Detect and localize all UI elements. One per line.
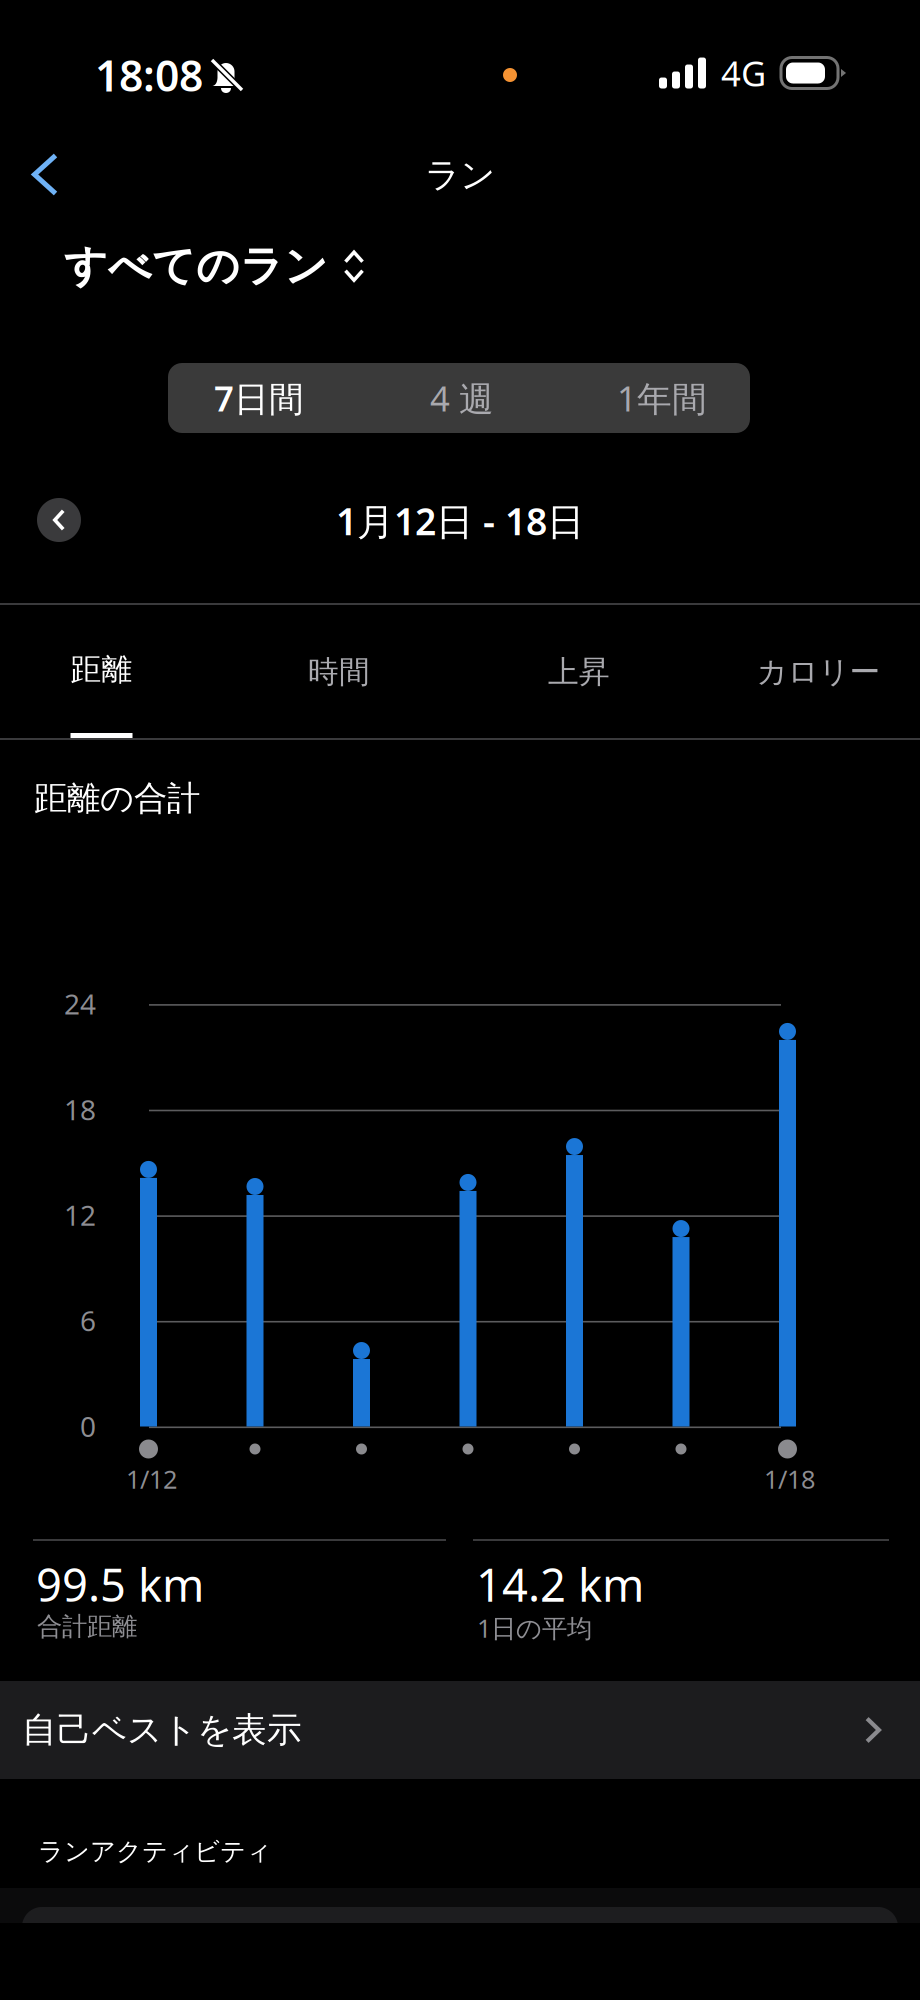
button[interactable]: 4 週 — [350, 363, 574, 433]
staticText: 24 — [64, 985, 96, 1022]
staticText: ラン — [425, 154, 495, 197]
button[interactable]: Previous week — [37, 498, 81, 542]
staticText: すべてのラン — [64, 240, 328, 292]
staticText: 6 — [80, 1302, 96, 1339]
staticText: 18 — [64, 1091, 96, 1128]
staticText: 4 週 — [430, 375, 494, 421]
button[interactable]: 距離 — [0, 606, 203, 738]
staticText: 1/12 — [126, 1462, 177, 1496]
staticText: 1/18 — [764, 1462, 815, 1496]
staticText: 合計距離 — [37, 1611, 137, 1642]
staticText: 1年間 — [617, 375, 707, 421]
button[interactable]: カロリー — [683, 606, 920, 738]
button[interactable]: 上昇 — [475, 606, 683, 738]
staticText: 12 — [64, 1196, 96, 1233]
staticText: 自己ベストを表示 — [22, 1709, 302, 1751]
staticText: 0 — [80, 1407, 96, 1445]
button[interactable]: 7日間 — [168, 363, 350, 433]
staticText: 距離の合計 — [34, 778, 200, 819]
staticText: 上昇 — [548, 653, 610, 691]
button[interactable]: 1年間 — [574, 363, 750, 433]
staticText: 時間 — [308, 653, 370, 691]
button[interactable]: 時間 — [203, 606, 475, 738]
staticText: 7日間 — [214, 375, 304, 421]
staticText: ランアクティビティ — [38, 1836, 272, 1867]
staticText: 1月12日 - 18日 — [336, 496, 584, 546]
button[interactable]: 自己ベストを表示 — [0, 1681, 920, 1779]
staticText: 4G — [721, 50, 766, 96]
staticText: 99.5 km — [36, 1554, 204, 1614]
staticText: 14.2 km — [476, 1554, 644, 1614]
staticText: 18:08 — [95, 47, 203, 103]
staticText: 1日の平均 — [477, 1611, 592, 1645]
button[interactable]: すべてのラン — [64, 240, 364, 292]
staticText: 距離 — [70, 651, 132, 688]
staticText: カロリー — [756, 653, 880, 691]
button[interactable]: Back — [14, 138, 76, 211]
